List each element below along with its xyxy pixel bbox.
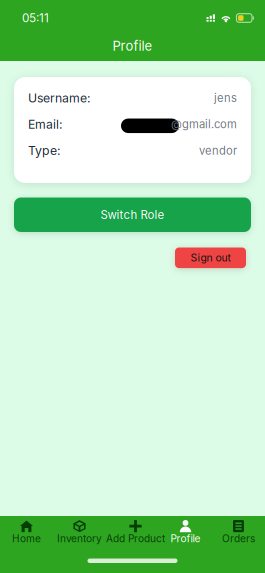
staticText: Type: (28, 143, 61, 158)
staticText: Orders (222, 532, 255, 545)
staticText: Add Product (106, 532, 165, 545)
staticText: Email: (28, 117, 63, 132)
staticText: Inventory (57, 532, 102, 545)
staticText: Profile (112, 38, 152, 54)
button[interactable]: Switch Role (14, 197, 251, 232)
staticText: jens (214, 91, 237, 105)
button[interactable]: Profile (159, 516, 212, 547)
button[interactable]: Sign out (175, 247, 246, 268)
staticText: @gmail.com (171, 117, 237, 131)
staticText: Username: (28, 91, 91, 105)
staticText: Profile (170, 532, 200, 545)
staticText: Switch Role (100, 208, 164, 222)
button[interactable]: Home (0, 516, 53, 547)
staticText: 05:11 (22, 11, 49, 25)
button[interactable]: Inventory (53, 516, 106, 547)
button[interactable]: Add Product (106, 516, 159, 547)
staticText: vendor (199, 144, 237, 157)
staticText: Sign out (190, 251, 230, 264)
button[interactable]: Orders (212, 516, 265, 547)
staticText: Home (12, 532, 41, 545)
